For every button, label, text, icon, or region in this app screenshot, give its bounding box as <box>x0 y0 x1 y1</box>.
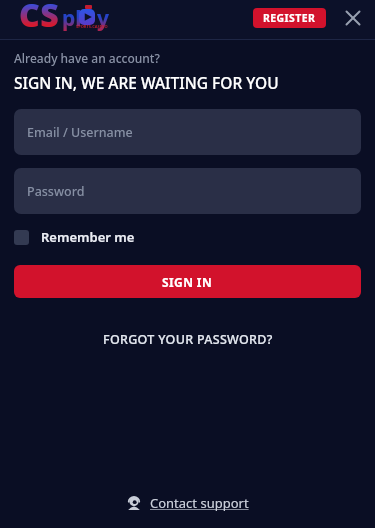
staticText: SIGN IN <box>162 274 213 290</box>
button[interactable]: Remember me <box>14 228 135 246</box>
staticText: Password <box>27 183 85 200</box>
button[interactable]: Contact support <box>127 494 249 512</box>
button[interactable]: SIGN IN <box>14 265 361 298</box>
staticText: SIGN IN, WE ARE WAITING FOR YOU <box>14 72 279 93</box>
staticText: Already have an account? <box>14 50 160 66</box>
staticText: SPORTS-CASINO <box>76 24 108 29</box>
button[interactable]: FORGOT YOUR PASSWORD? <box>103 331 273 348</box>
staticText: Contact support <box>150 494 249 512</box>
staticText: Email / Username <box>27 124 133 141</box>
staticText: y <box>97 4 109 33</box>
button[interactable]: REGISTER <box>253 8 326 28</box>
staticText: FORGOT YOUR PASSWORD? <box>103 331 273 348</box>
button[interactable] <box>339 4 367 32</box>
staticText: Remember me <box>41 228 135 246</box>
button[interactable]: Email / Username <box>14 109 361 155</box>
staticText: pl <box>62 4 82 33</box>
staticText: REGISTER <box>263 11 316 25</box>
staticText: CS <box>19 0 60 29</box>
button[interactable]: Password <box>14 168 361 214</box>
